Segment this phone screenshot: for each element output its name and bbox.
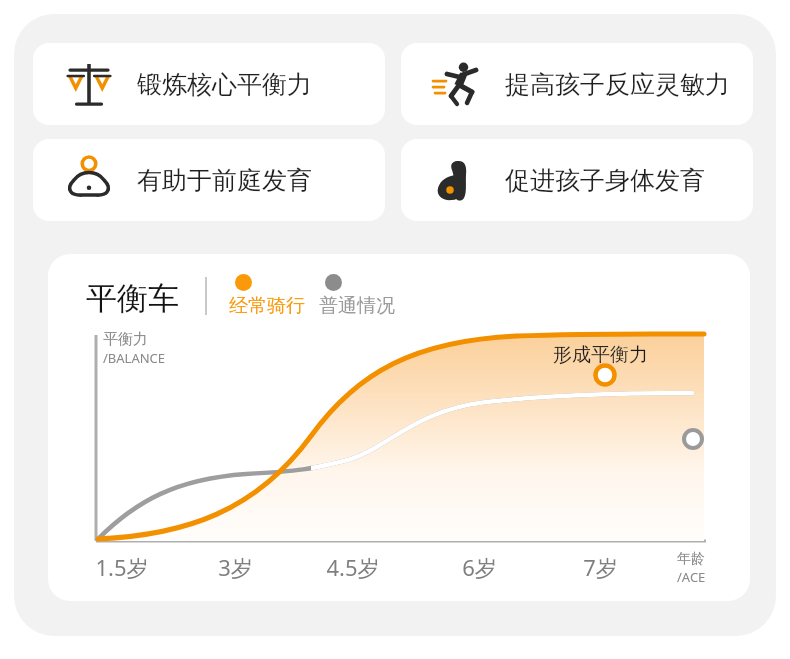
button[interactable]: 普通情况	[319, 274, 395, 318]
staticText: 6岁	[462, 552, 497, 582]
staticText: 4.5岁	[326, 552, 380, 582]
other: Physical development	[432, 155, 482, 205]
staticText: /ACE	[677, 568, 706, 586]
staticText: 经常骑行	[229, 294, 305, 318]
other: Vestibular development	[64, 155, 114, 205]
staticText: 锻炼核心平衡力	[137, 69, 312, 100]
staticText: 年龄	[677, 550, 705, 568]
staticText: 平衡车	[86, 279, 179, 318]
button[interactable]: Physical development	[401, 139, 753, 221]
staticText: 形成平衡力	[553, 343, 648, 367]
button[interactable]: Agility	[401, 43, 753, 125]
other: Agility	[432, 59, 482, 109]
staticText: 7岁	[583, 552, 618, 582]
other: Balance	[64, 59, 114, 109]
staticText: 1.5岁	[95, 552, 149, 582]
button[interactable]: Balance	[33, 43, 385, 125]
staticText: 3岁	[218, 552, 253, 582]
staticText: 有助于前庭发育	[137, 165, 312, 196]
button[interactable]: Vestibular development	[33, 139, 385, 221]
button[interactable]: 平衡车	[48, 254, 750, 601]
staticText: 普通情况	[319, 294, 395, 318]
staticText: 提高孩子反应灵敏力	[505, 69, 730, 100]
staticText: 促进孩子身体发育	[505, 165, 705, 196]
button[interactable]: 经常骑行	[229, 274, 305, 318]
staticText: 平衡力	[103, 330, 148, 349]
staticText: /BALANCE	[103, 349, 166, 367]
